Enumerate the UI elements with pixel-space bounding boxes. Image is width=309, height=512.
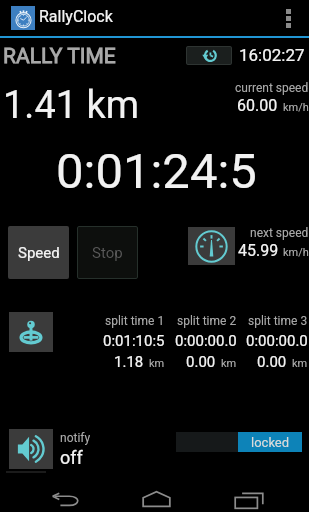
staticText: 0.00 [186,353,216,371]
staticText: 0:01:24:5 [56,143,257,200]
button[interactable]: Notify [9,429,53,469]
staticText: current speed [235,81,309,95]
staticText: km [292,357,308,370]
staticText: km/h [283,246,309,259]
button[interactable]: More options [276,0,309,36]
button[interactable]: Speed [8,226,69,279]
staticText: split time 1 [105,314,165,328]
staticText: 1.41 km [3,83,140,128]
button[interactable]: locked [176,432,302,452]
staticText: 60.00 [237,96,278,115]
staticText: locked [251,435,290,450]
button[interactable]: Next speed [188,227,235,265]
staticText: Speed [18,244,60,262]
staticText: split time 2 [177,314,237,328]
button[interactable]: Back [52,493,80,506]
staticText: notify [60,431,91,445]
staticText: 1.18 [114,353,144,371]
staticText: 0:00:00.0 [175,332,237,350]
staticText: next speed [250,226,309,240]
button[interactable]: Home [142,491,171,507]
button[interactable]: Recents [234,492,264,509]
staticText: RallyClock [39,7,113,26]
staticText: 45.99 [238,241,279,260]
staticText: Stop [92,244,123,262]
staticText: km [221,357,237,370]
staticText: km [149,357,165,370]
button[interactable]: Stop [77,226,138,279]
staticText: off [60,447,83,468]
staticText: 0.00 [257,353,287,371]
button[interactable]: History [186,46,232,65]
staticText: km/h [283,101,309,114]
button[interactable]: Split [9,312,53,352]
staticText: split time 3 [248,314,308,328]
staticText: RALLY TIME [3,44,116,69]
staticText: 0:01:10:5 [103,332,165,350]
staticText: 0:00:00.0 [246,332,308,350]
staticText: 16:02:27 [239,45,305,65]
